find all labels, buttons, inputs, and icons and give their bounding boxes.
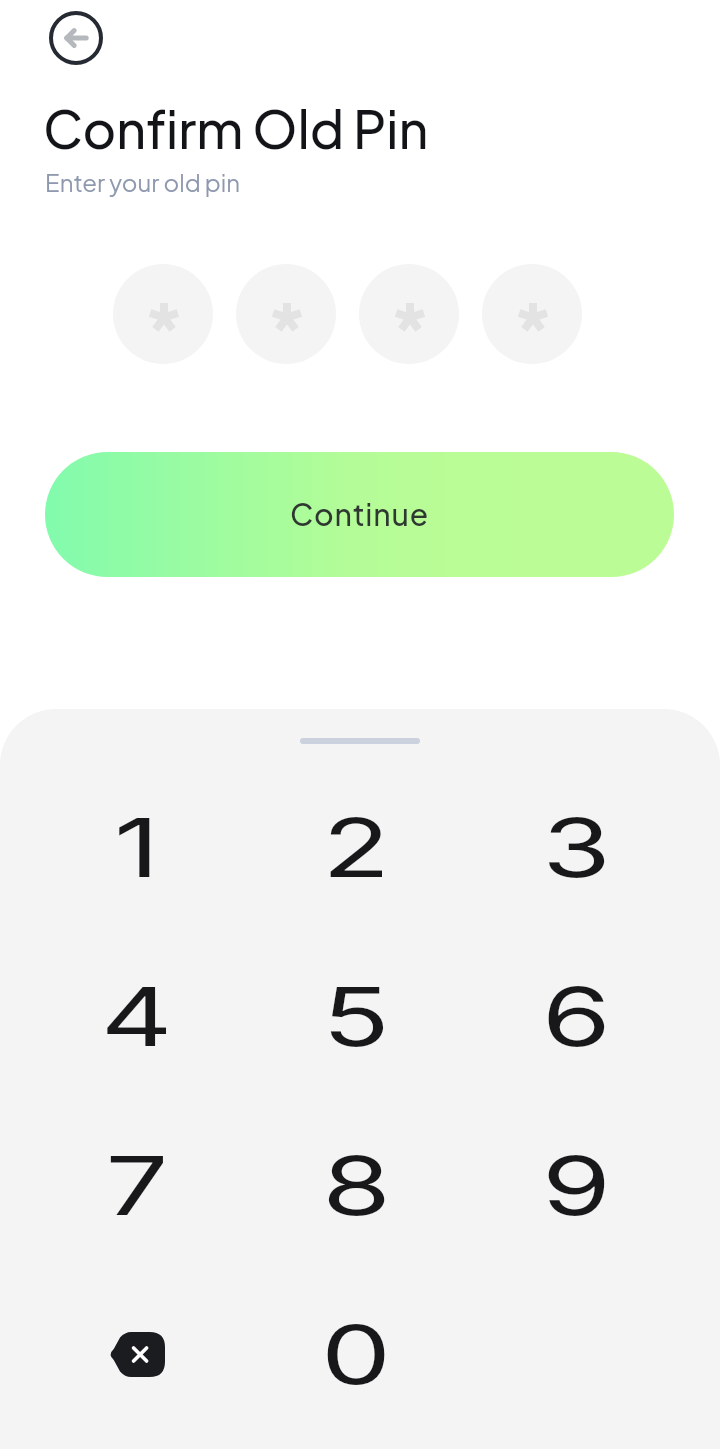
button[interactable]: 5 — [246, 932, 466, 1101]
button[interactable]: 7 — [27, 1101, 246, 1270]
staticText: 7 — [105, 1137, 168, 1235]
button[interactable]: 6 — [466, 932, 686, 1101]
button[interactable]: 1 — [27, 763, 246, 932]
staticText: 3 — [542, 799, 611, 897]
staticText: 4 — [100, 968, 173, 1066]
other: Pin digit 2 — [236, 264, 336, 364]
button[interactable]: Back — [47, 9, 105, 67]
other: Pin digit 3 — [359, 264, 459, 364]
staticText: 6 — [542, 968, 611, 1066]
button[interactable]: 9 — [466, 1101, 686, 1270]
staticText: 0 — [320, 1306, 392, 1404]
staticText: 8 — [322, 1137, 391, 1235]
staticText: Confirm Old Pin — [43, 96, 429, 161]
button[interactable]: Delete — [27, 1270, 246, 1439]
button[interactable]: 3 — [466, 763, 686, 932]
other: Pin digit 4 — [482, 264, 582, 364]
button[interactable]: 0 — [246, 1270, 466, 1439]
staticText: Continue — [290, 495, 430, 533]
button[interactable]: 8 — [246, 1101, 466, 1270]
button[interactable]: 4 — [27, 932, 246, 1101]
staticText: 1 — [114, 799, 159, 897]
button[interactable]: Continue — [45, 452, 674, 577]
staticText: 2 — [322, 799, 390, 897]
staticText: Enter your old pin — [45, 167, 241, 197]
staticText: 9 — [542, 1137, 611, 1235]
button[interactable]: 2 — [246, 763, 466, 932]
other: Pin digit 1 — [113, 264, 213, 364]
staticText: 5 — [322, 968, 390, 1066]
